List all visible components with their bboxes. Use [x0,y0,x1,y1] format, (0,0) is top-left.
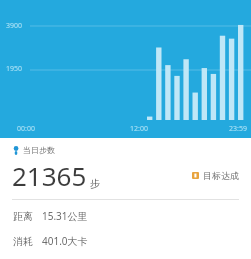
staticText: 消耗 [13,235,33,248]
staticText: 3900 [6,21,23,31]
staticText: 15.31公里 [42,209,88,223]
staticText: 12:00 [130,124,148,134]
staticText: 步 [90,177,100,190]
staticText: 23:59 [229,124,247,134]
staticText: 00:00 [17,124,35,134]
button[interactable]: 消耗 [0,234,251,248]
staticText: 1950 [6,64,23,74]
button[interactable]: 目标达成 [192,170,251,181]
button[interactable]: 当日步数 [0,145,251,155]
button[interactable]: 距离 [0,209,251,223]
staticText: 距离 [13,210,33,223]
staticText: 401.0大卡 [42,234,88,248]
staticText: 当日步数 [23,145,55,155]
staticText: 21365 [12,158,87,193]
staticText: 目标达成 [203,170,239,181]
other: 目标达成 [192,172,199,179]
